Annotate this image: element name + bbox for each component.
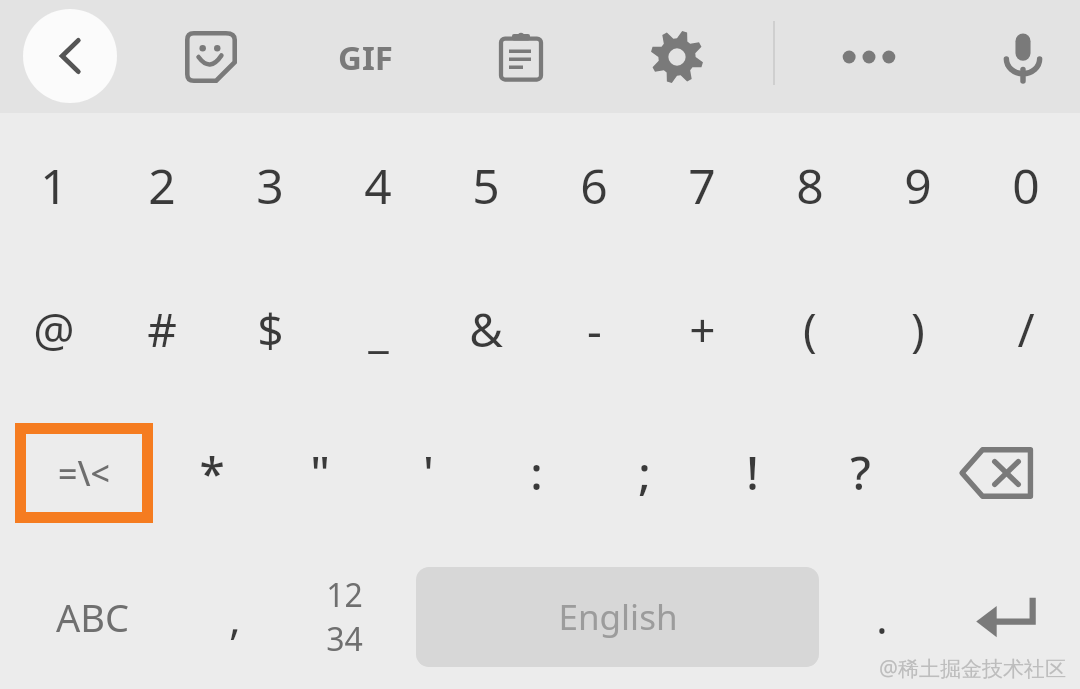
staticText: 12 xyxy=(326,573,363,617)
staticText: 9 xyxy=(904,153,932,218)
button[interactable]: / xyxy=(972,258,1080,400)
staticText: 4 xyxy=(364,153,392,218)
staticText: English xyxy=(558,593,678,641)
button[interactable]: Back xyxy=(23,9,117,103)
button[interactable]: Stickers xyxy=(169,15,253,99)
button[interactable]: Enter xyxy=(932,545,1080,689)
button[interactable]: . xyxy=(831,545,932,689)
button[interactable]: * xyxy=(158,400,266,545)
staticText: =\< xyxy=(58,450,110,496)
button[interactable]: @ xyxy=(0,258,108,400)
button[interactable]: 9 xyxy=(864,113,972,258)
staticText: ? xyxy=(850,441,871,504)
staticText: ( xyxy=(803,298,817,361)
staticText: $ xyxy=(257,298,284,361)
button[interactable]: ; xyxy=(590,400,698,545)
button[interactable]: Number pad xyxy=(285,545,404,689)
button[interactable]: 8 xyxy=(756,113,864,258)
button[interactable]: 6 xyxy=(540,113,648,258)
staticText: ABC xyxy=(56,591,129,643)
staticText: - xyxy=(587,298,602,361)
button[interactable]: # xyxy=(108,258,216,400)
button[interactable]: - xyxy=(540,258,648,400)
staticText: & xyxy=(469,298,503,361)
button[interactable]: More options xyxy=(827,15,911,99)
button[interactable]: Settings xyxy=(635,15,719,99)
button[interactable]: GIF xyxy=(323,15,407,99)
staticText: + xyxy=(689,298,716,361)
button[interactable]: =\< xyxy=(0,400,158,545)
staticText: ! xyxy=(746,441,759,504)
button[interactable]: ( xyxy=(756,258,864,400)
button[interactable]: , xyxy=(184,545,285,689)
staticText: 5 xyxy=(472,153,500,218)
staticText: * xyxy=(199,441,225,504)
button[interactable]: 5 xyxy=(432,113,540,258)
staticText: 34 xyxy=(326,617,363,661)
button[interactable]: ' xyxy=(374,400,482,545)
staticText: # xyxy=(147,298,177,361)
button[interactable]: ABC xyxy=(0,545,184,689)
button[interactable]: $ xyxy=(216,258,324,400)
button[interactable]: 3 xyxy=(216,113,324,258)
staticText: @ xyxy=(33,298,75,361)
staticText: _ xyxy=(368,298,389,361)
button[interactable]: : xyxy=(482,400,590,545)
staticText: 2 xyxy=(148,153,176,218)
button[interactable]: ! xyxy=(698,400,806,545)
button[interactable]: 7 xyxy=(648,113,756,258)
button[interactable]: Voice input xyxy=(981,15,1065,99)
button[interactable]: 4 xyxy=(324,113,432,258)
staticText: . xyxy=(876,587,888,647)
staticText: ; xyxy=(638,441,651,504)
staticText: @稀土掘金技术社区 xyxy=(879,654,1066,683)
button[interactable]: English xyxy=(416,567,819,667)
button[interactable]: " xyxy=(266,400,374,545)
button[interactable]: Clipboard xyxy=(479,15,563,99)
staticText: ' xyxy=(423,441,434,504)
button[interactable]: 2 xyxy=(108,113,216,258)
staticText: 3 xyxy=(256,153,284,218)
staticText: 0 xyxy=(1012,153,1040,218)
staticText: 6 xyxy=(580,153,608,218)
staticText: " xyxy=(310,441,330,504)
button[interactable]: ) xyxy=(864,258,972,400)
button[interactable]: & xyxy=(432,258,540,400)
button[interactable]: + xyxy=(648,258,756,400)
staticText: 1 xyxy=(40,153,68,218)
staticText: / xyxy=(1017,298,1035,361)
staticText: ) xyxy=(911,298,925,361)
staticText: , xyxy=(229,587,241,647)
button[interactable]: ? xyxy=(806,400,914,545)
staticText: 8 xyxy=(796,153,824,218)
staticText: GIF xyxy=(338,35,393,80)
staticText: 7 xyxy=(688,153,716,218)
staticText: : xyxy=(530,441,543,504)
button[interactable]: 0 xyxy=(972,113,1080,258)
button[interactable]: _ xyxy=(324,258,432,400)
button[interactable]: Backspace xyxy=(914,400,1080,545)
button[interactable]: 1 xyxy=(0,113,108,258)
